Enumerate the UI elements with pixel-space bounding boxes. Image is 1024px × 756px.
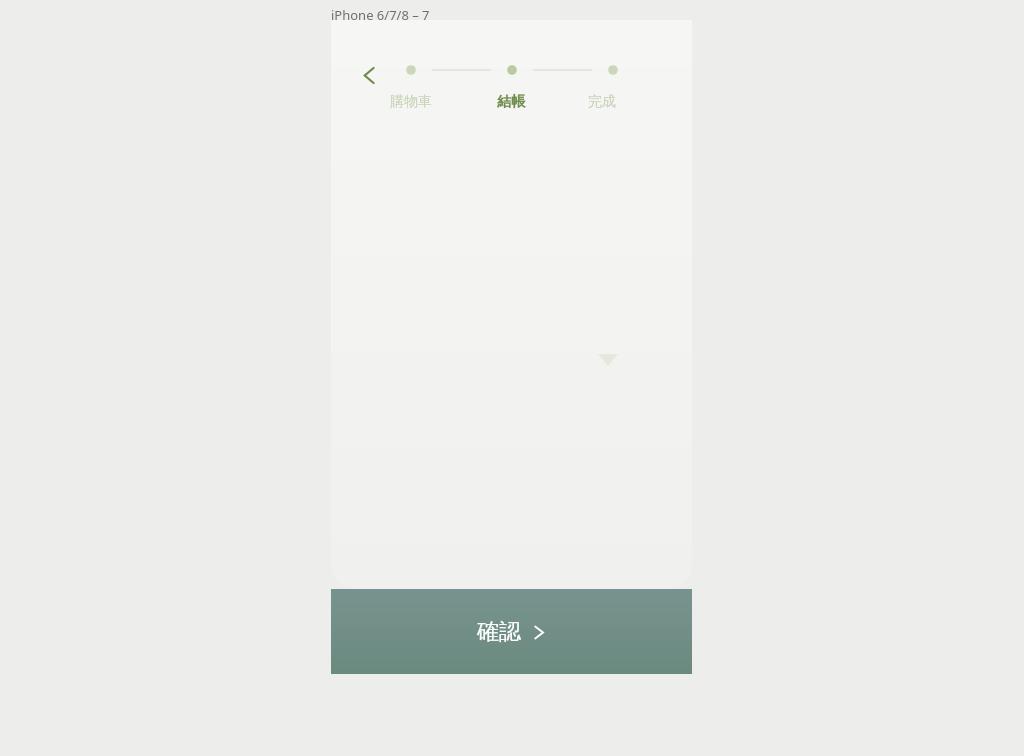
button[interactable]: 確認 (331, 589, 692, 674)
staticText: 購物車 (390, 93, 432, 111)
button[interactable]: 結帳 (486, 90, 536, 114)
staticText: 結帳 (497, 93, 525, 111)
button[interactable]: 完成 (577, 90, 627, 114)
staticText: 確認 (477, 618, 521, 646)
staticText: 完成 (588, 93, 616, 111)
button[interactable]: Back (352, 58, 386, 92)
staticText: iPhone 6/7/8 – 7 (331, 6, 430, 24)
button[interactable]: 購物車 (386, 90, 436, 114)
